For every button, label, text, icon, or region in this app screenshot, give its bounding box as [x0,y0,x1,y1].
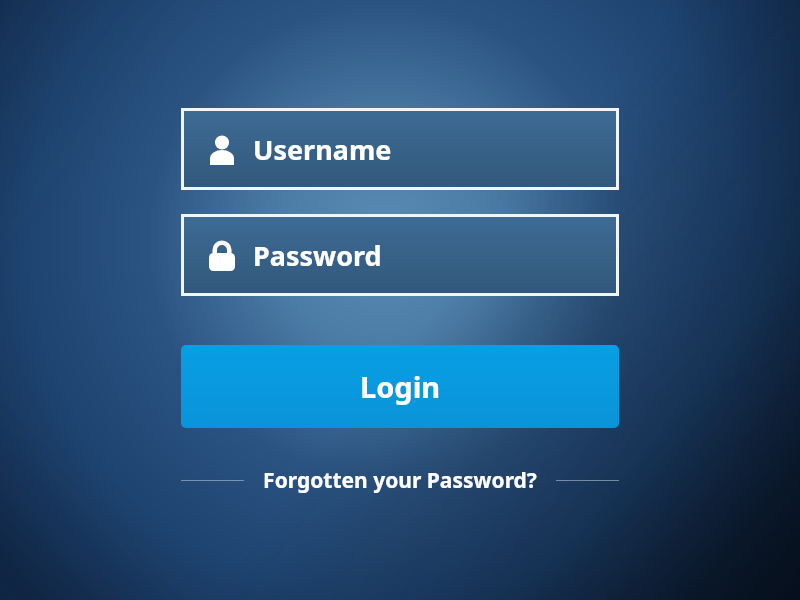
button[interactable]: Forgotten your Password? [181,462,619,498]
button[interactable]: Username [184,111,616,187]
staticText: Username [253,131,392,168]
staticText: Login [360,367,441,406]
staticText: Password [253,237,382,274]
button[interactable]: Password [184,217,616,293]
staticText: Forgotten your Password? [263,466,537,495]
button[interactable]: Login [181,345,619,428]
